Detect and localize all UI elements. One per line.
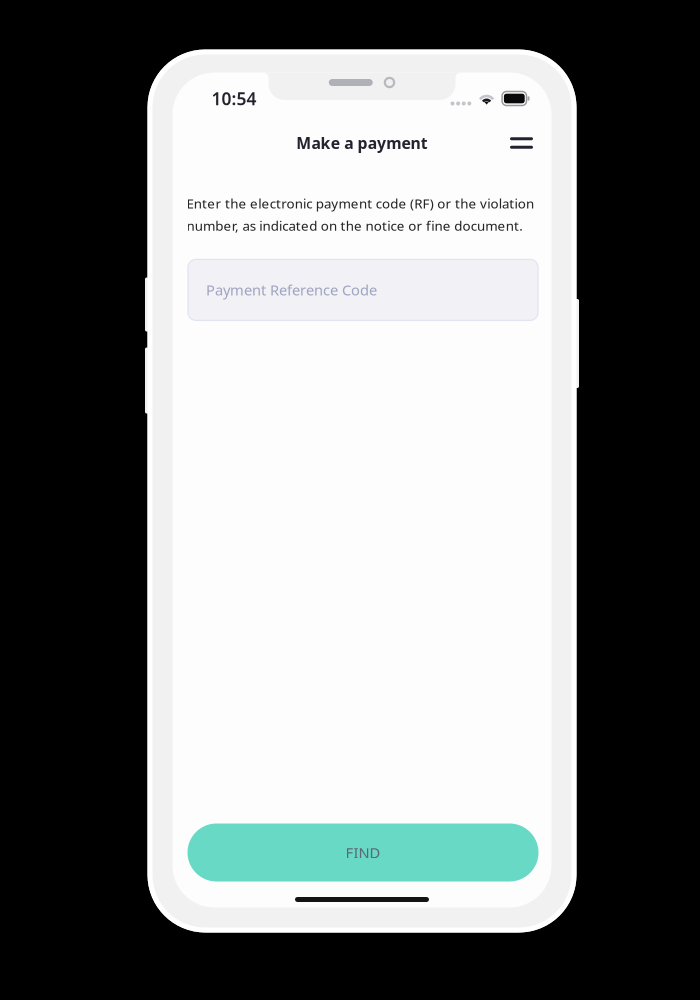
staticText: Payment Reference Code: [206, 280, 377, 300]
button[interactable]: Payment Reference Code: [188, 259, 538, 320]
staticText: FIND: [345, 843, 380, 862]
staticText: 10:54: [211, 87, 256, 110]
staticText: Enter the electronic payment code (RF) o…: [186, 194, 534, 234]
button[interactable]: Menu: [501, 126, 541, 160]
button[interactable]: FIND: [187, 823, 538, 881]
staticText: Make a payment: [296, 132, 428, 154]
